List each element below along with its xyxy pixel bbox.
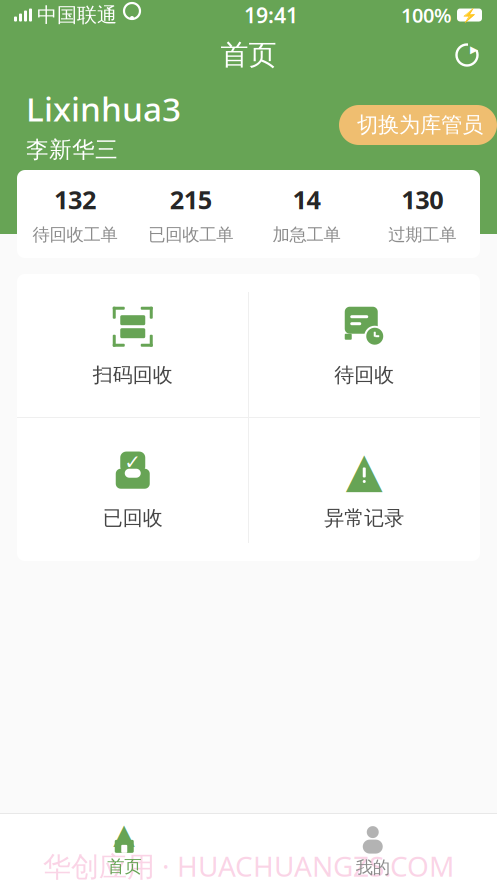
staticText: ⚡: [461, 7, 478, 23]
staticText: 已回收工单: [148, 224, 233, 245]
button[interactable]: 215: [133, 170, 249, 258]
staticText: 132: [54, 182, 96, 216]
staticText: 14: [292, 182, 320, 216]
staticText: ▸: [470, 40, 478, 58]
button[interactable]: ✓: [17, 417, 248, 560]
staticText: 华创应用 · HUACHUANGZS.COM: [43, 847, 454, 883]
button[interactable]: ▲: [0, 818, 248, 883]
staticText: 我的: [356, 857, 390, 878]
staticText: ✓: [124, 451, 141, 473]
staticText: ▲: [346, 442, 383, 497]
staticText: 扫码回收: [93, 363, 173, 387]
button[interactable]: 14: [248, 170, 364, 258]
staticText: 加急工单: [272, 224, 340, 245]
button[interactable]: 132: [17, 170, 133, 258]
button[interactable]: 扫码回收: [17, 274, 248, 417]
staticText: Lixinhua3: [26, 86, 181, 131]
staticText: 中国联通: [37, 3, 117, 27]
staticText: 异常记录: [324, 506, 404, 530]
staticText: 李新华三: [26, 136, 118, 163]
staticText: 215: [170, 182, 212, 216]
staticText: 切换为库管员: [357, 112, 483, 138]
button[interactable]: 130: [364, 170, 480, 258]
staticText: 待回收工单: [32, 224, 117, 245]
button[interactable]: 待回收: [248, 274, 480, 417]
staticText: 已回收: [103, 506, 163, 530]
staticText: 过期工单: [388, 224, 456, 245]
staticText: 100%: [401, 2, 452, 28]
staticText: 19:41: [244, 1, 298, 29]
staticText: 130: [401, 182, 443, 216]
staticText: 首页: [107, 856, 141, 877]
button[interactable]: 刷新: [445, 33, 489, 77]
staticText: ▲: [113, 818, 135, 850]
staticText: 首页: [220, 38, 276, 72]
button[interactable]: 我的: [248, 818, 497, 883]
staticText: 待回收: [334, 363, 394, 387]
button[interactable]: ▲: [248, 417, 480, 560]
button[interactable]: 切换为库管员: [339, 105, 497, 145]
